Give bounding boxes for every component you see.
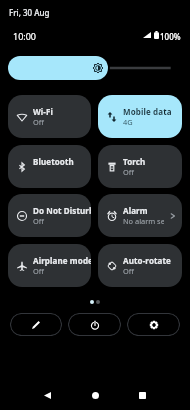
button[interactable]: Power <box>68 313 121 336</box>
staticText: Auto-rotate <box>123 255 172 266</box>
staticText: Off <box>33 117 44 127</box>
staticText: Bluetooth <box>33 156 74 167</box>
button[interactable]: Auto-rotate <box>98 244 182 287</box>
button[interactable]: Settings <box>127 313 180 336</box>
button[interactable]: Airplane mode <box>8 244 91 287</box>
button[interactable]: Torch <box>98 145 182 188</box>
button[interactable]: Alarm <box>98 194 182 237</box>
button[interactable]: Wi-Fi <box>8 95 91 138</box>
staticText: Do Not Disturb <box>33 205 91 216</box>
staticText: Wi-Fi <box>33 106 54 117</box>
staticText: 100% <box>160 31 181 42</box>
staticText: Fri, 30 Aug <box>9 7 50 18</box>
staticText: Mobile data <box>123 106 172 117</box>
button[interactable]: Edit <box>10 313 62 336</box>
button[interactable]: Recents <box>127 387 158 403</box>
button[interactable]: Mobile data <box>98 95 182 138</box>
staticText: Off <box>33 266 44 276</box>
staticText: Off <box>123 167 134 177</box>
staticText: Off <box>33 216 44 226</box>
staticText: 4G <box>123 117 133 127</box>
staticText: No alarm set <box>123 216 164 226</box>
button[interactable]: Brightness <box>8 56 108 80</box>
staticText: Off <box>123 266 134 276</box>
staticText: Torch <box>123 156 146 167</box>
staticText: 10:00 <box>13 30 37 42</box>
button[interactable]: Home <box>80 387 111 403</box>
button[interactable]: Bluetooth <box>8 145 91 188</box>
button[interactable]: Do Not Disturb <box>8 194 91 237</box>
button[interactable]: Back <box>32 387 63 403</box>
staticText: Airplane mode <box>33 255 91 266</box>
staticText: Alarm <box>123 205 148 216</box>
